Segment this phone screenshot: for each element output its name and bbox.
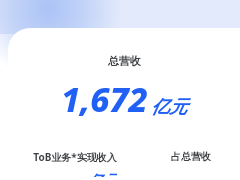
staticText: 亿元: [151, 96, 187, 119]
staticText: 1,672: [61, 76, 148, 122]
button[interactable]: 总营收: [8, 28, 240, 180]
staticText: ToB业务*实现收入: [33, 150, 117, 164]
staticText: 占总营收: [171, 150, 211, 163]
staticText: 亿元: [87, 172, 117, 177]
button[interactable]: ToB业务*实现收入: [8, 150, 141, 180]
button[interactable]: 占总营收: [141, 150, 240, 180]
staticText: 总营收: [108, 54, 141, 68]
